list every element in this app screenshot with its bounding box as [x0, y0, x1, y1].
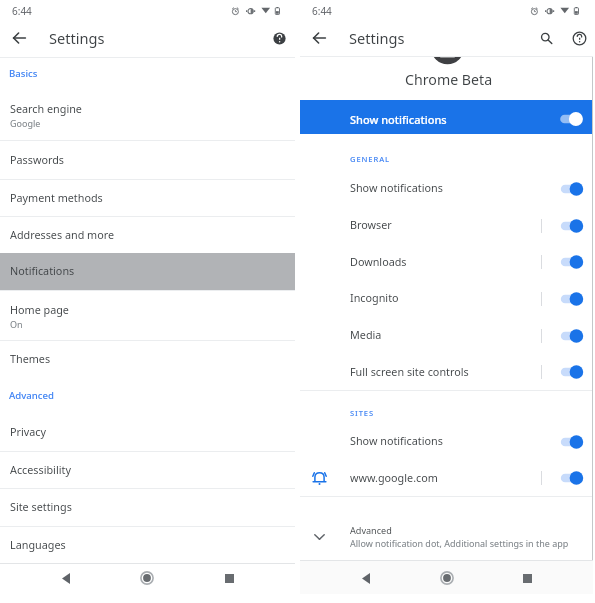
button[interactable]: Back: [58, 570, 74, 586]
staticText: Show notifications: [350, 112, 447, 127]
staticText: Settings: [349, 28, 405, 48]
staticText: Downloads: [350, 254, 407, 269]
button[interactable]: Passwords: [0, 141, 295, 179]
button[interactable]: Home: [439, 570, 455, 586]
staticText: Privacy: [10, 424, 47, 439]
staticText: Advanced: [9, 389, 54, 402]
staticText: Accessibility: [10, 462, 71, 477]
staticText: 6:44: [12, 4, 32, 18]
button[interactable]: Recents: [221, 570, 237, 586]
button[interactable]: Browser: [300, 207, 593, 244]
staticText: Chrome Beta: [405, 70, 493, 89]
staticText: Show notifications: [350, 433, 443, 448]
staticText: Browser: [350, 217, 392, 232]
button[interactable]: www.google.com: [300, 460, 593, 496]
button[interactable]: Accessibility: [0, 452, 295, 488]
staticText: Show notifications: [350, 180, 443, 195]
staticText: On: [10, 318, 23, 330]
staticText: Themes: [10, 351, 51, 366]
staticText: Passwords: [10, 152, 65, 167]
button[interactable]: Back: [312, 31, 326, 45]
button[interactable]: Incognito: [300, 280, 593, 317]
staticText: Full screen site controls: [350, 364, 469, 379]
staticText: Settings: [49, 28, 105, 48]
staticText: Addresses and more: [10, 227, 115, 242]
staticText: Incognito: [350, 290, 399, 305]
staticText: Languages: [10, 537, 66, 552]
button[interactable]: Back: [12, 31, 26, 45]
staticText: www.google.com: [350, 470, 438, 485]
button[interactable]: Show notifications: [300, 100, 593, 134]
button[interactable]: Themes: [0, 341, 295, 378]
staticText: 6:44: [312, 4, 332, 18]
button[interactable]: Search: [537, 29, 555, 47]
button[interactable]: Languages: [0, 527, 295, 563]
staticText: Notifications: [10, 263, 75, 278]
button[interactable]: Payment methods: [0, 180, 295, 216]
staticText: Basics: [9, 67, 38, 80]
staticText: Site settings: [10, 499, 72, 514]
button[interactable]: Recents: [519, 570, 535, 586]
button[interactable]: Help: [570, 29, 588, 47]
button[interactable]: Advanced: [300, 497, 593, 560]
staticText: Allow notification dot, Additional setti…: [350, 537, 569, 549]
button[interactable]: Show notifications: [300, 423, 593, 460]
staticText: Media: [350, 327, 382, 342]
button[interactable]: Full screen site controls: [300, 354, 593, 390]
button[interactable]: Home: [139, 570, 155, 586]
button[interactable]: Notifications: [0, 253, 295, 290]
button[interactable]: Addresses and more: [0, 217, 295, 253]
staticText: Google: [10, 117, 41, 129]
staticText: Advanced: [350, 524, 392, 536]
button[interactable]: Downloads: [300, 244, 593, 280]
button[interactable]: Privacy: [0, 414, 295, 451]
staticText: SITES: [350, 408, 375, 418]
staticText: Home page: [10, 302, 69, 317]
button[interactable]: Show notifications: [300, 170, 593, 207]
button[interactable]: Back: [358, 570, 374, 586]
staticText: Search engine: [10, 101, 82, 116]
button[interactable]: Home page: [0, 291, 295, 340]
button[interactable]: Help: [270, 29, 288, 47]
button[interactable]: Site settings: [0, 489, 295, 526]
staticText: Payment methods: [10, 190, 103, 205]
staticText: GENERAL: [350, 154, 391, 164]
button[interactable]: Media: [300, 317, 593, 354]
button[interactable]: Search engine: [0, 90, 295, 140]
